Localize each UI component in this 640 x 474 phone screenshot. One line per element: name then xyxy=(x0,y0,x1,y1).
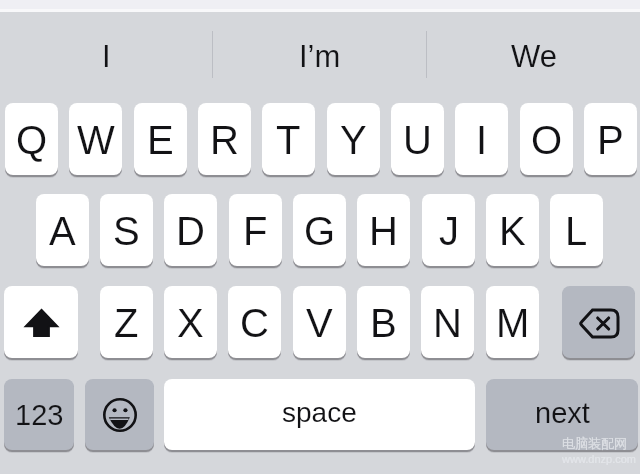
staticText: Z xyxy=(114,301,139,346)
staticText: G xyxy=(304,209,336,254)
button[interactable]: F xyxy=(229,194,282,266)
button[interactable]: Emoji xyxy=(85,379,154,450)
button[interactable]: Shift xyxy=(4,286,78,358)
button[interactable]: next xyxy=(486,379,638,450)
staticText: T xyxy=(276,118,301,163)
staticText: Q xyxy=(16,118,48,163)
button[interactable]: Z xyxy=(100,286,153,358)
staticText: D xyxy=(176,209,205,254)
staticText: M xyxy=(496,301,530,346)
button[interactable]: X xyxy=(164,286,217,358)
button[interactable]: O xyxy=(520,103,573,175)
staticText: X xyxy=(177,301,204,346)
staticText: L xyxy=(565,209,588,254)
staticText: U xyxy=(403,118,432,163)
staticText: I xyxy=(476,118,488,163)
staticText: F xyxy=(243,209,268,254)
staticText: 电脑装配网 xyxy=(562,435,627,451)
button[interactable]: S xyxy=(100,194,153,266)
staticText: We xyxy=(511,39,557,74)
staticText: I’m xyxy=(299,39,341,74)
staticText: V xyxy=(306,301,333,346)
staticText: H xyxy=(369,209,398,254)
button[interactable]: T xyxy=(262,103,315,175)
staticText: next xyxy=(535,397,590,429)
button[interactable]: D xyxy=(164,194,217,266)
staticText: O xyxy=(531,118,563,163)
staticText: R xyxy=(210,118,239,163)
button[interactable]: Q xyxy=(5,103,58,175)
button[interactable]: N xyxy=(421,286,474,358)
button[interactable]: H xyxy=(357,194,410,266)
staticText: K xyxy=(499,209,526,254)
button[interactable]: Delete xyxy=(562,286,635,358)
staticText: A xyxy=(49,209,76,254)
staticText: I xyxy=(102,39,111,74)
button[interactable]: 123 xyxy=(4,379,74,450)
staticText: www.dnzp.com xyxy=(562,453,636,465)
staticText: S xyxy=(113,209,140,254)
staticText: W xyxy=(77,118,115,163)
staticText: P xyxy=(597,118,624,163)
button[interactable]: P xyxy=(584,103,637,175)
button[interactable]: U xyxy=(391,103,444,175)
staticText: N xyxy=(433,301,462,346)
button[interactable]: We xyxy=(427,11,640,101)
button[interactable]: I xyxy=(0,11,213,101)
staticText: J xyxy=(439,209,459,254)
button[interactable]: J xyxy=(422,194,475,266)
button[interactable]: I xyxy=(455,103,508,175)
staticText: 123 xyxy=(15,399,64,431)
staticText: E xyxy=(147,118,174,163)
staticText: Y xyxy=(340,118,367,163)
button[interactable]: I’m xyxy=(213,11,426,101)
button[interactable]: M xyxy=(486,286,539,358)
button[interactable]: V xyxy=(293,286,346,358)
button[interactable]: K xyxy=(486,194,539,266)
button[interactable]: C xyxy=(228,286,281,358)
button[interactable]: Y xyxy=(327,103,380,175)
button[interactable]: G xyxy=(293,194,346,266)
button[interactable]: B xyxy=(357,286,410,358)
staticText: B xyxy=(370,301,397,346)
button[interactable]: A xyxy=(36,194,89,266)
button[interactable]: E xyxy=(134,103,187,175)
button[interactable]: R xyxy=(198,103,251,175)
button[interactable]: space xyxy=(164,379,475,450)
staticText: space xyxy=(282,397,357,428)
button[interactable]: L xyxy=(550,194,603,266)
staticText: C xyxy=(240,301,269,346)
button[interactable]: W xyxy=(69,103,122,175)
